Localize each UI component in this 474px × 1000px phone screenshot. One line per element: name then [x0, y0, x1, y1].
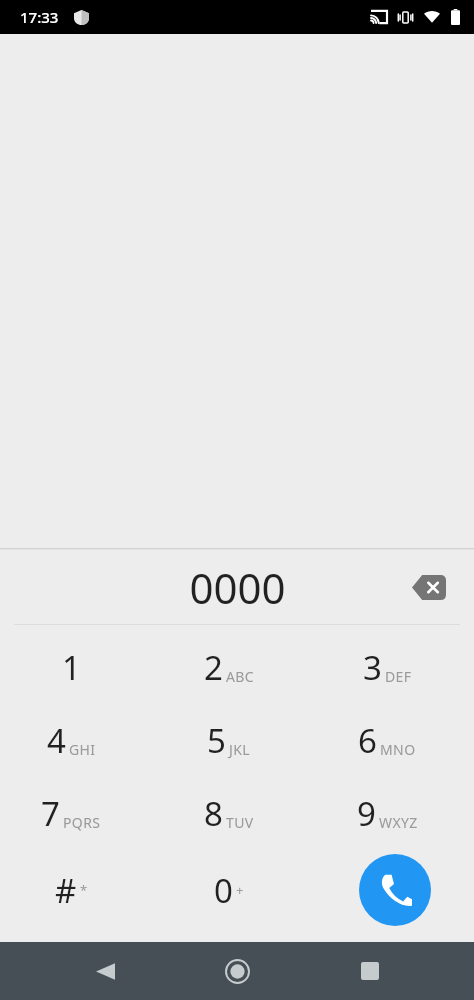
staticText: GHI: [69, 740, 96, 759]
button[interactable]: 5: [158, 704, 316, 777]
button[interactable]: #: [0, 850, 158, 930]
staticText: 5: [207, 718, 226, 763]
staticText: DEF: [385, 667, 412, 686]
staticText: 9: [357, 791, 376, 836]
staticText: JKL: [229, 740, 251, 759]
staticText: 2: [204, 645, 223, 690]
staticText: 0000: [189, 559, 286, 616]
button[interactable]: 1: [0, 631, 158, 704]
button[interactable]: 6: [316, 704, 474, 777]
staticText: 3: [363, 645, 382, 690]
staticText: 6: [358, 718, 377, 763]
button[interactable]: 4: [0, 704, 158, 777]
button[interactable]: 7: [0, 777, 158, 850]
button[interactable]: 8: [158, 777, 316, 850]
staticText: #: [55, 868, 77, 913]
button[interactable]: Call: [359, 854, 431, 926]
button[interactable]: Recent apps: [342, 943, 398, 999]
button[interactable]: 9: [316, 777, 474, 850]
staticText: 17:33: [20, 7, 59, 27]
staticText: 8: [204, 791, 223, 836]
staticText: 7: [41, 791, 60, 836]
button[interactable]: 3: [316, 631, 474, 704]
button[interactable]: Home: [209, 943, 265, 999]
staticText: *: [80, 881, 88, 899]
staticText: TUV: [226, 813, 254, 832]
staticText: +: [236, 881, 244, 899]
staticText: 0: [214, 868, 233, 913]
button[interactable]: Backspace: [406, 564, 452, 610]
staticText: MNO: [380, 740, 416, 759]
button[interactable]: 0: [158, 850, 316, 930]
staticText: 1: [62, 645, 81, 690]
staticText: WXYZ: [379, 813, 418, 832]
button[interactable]: Back: [77, 943, 133, 999]
button[interactable]: 2: [158, 631, 316, 704]
staticText: 4: [47, 718, 66, 763]
staticText: PQRS: [63, 813, 101, 832]
staticText: ABC: [226, 667, 255, 686]
